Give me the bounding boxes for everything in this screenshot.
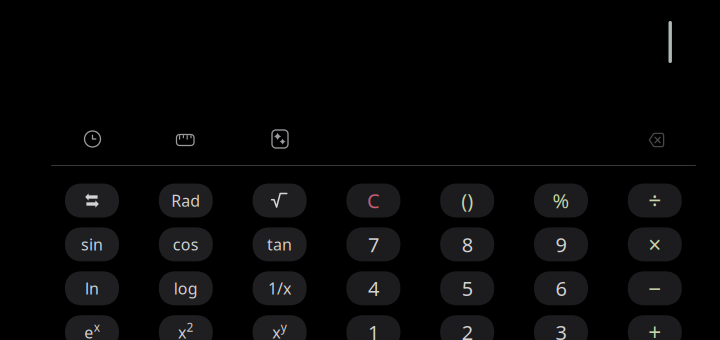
staticText: () — [461, 187, 473, 214]
button[interactable]: Percent — [534, 183, 588, 217]
staticText: − — [648, 273, 661, 303]
staticText: e — [84, 322, 93, 340]
button[interactable]: 6 — [534, 271, 588, 305]
button[interactable]: Clear — [346, 183, 400, 217]
staticText: 6 — [555, 275, 566, 302]
staticText: y — [281, 319, 287, 335]
button[interactable]: Tangent — [253, 227, 307, 261]
staticText: x — [178, 322, 186, 340]
staticText: ÷ — [648, 185, 661, 215]
button[interactable]: Delete — [647, 131, 665, 148]
button[interactable]: Log — [159, 271, 213, 305]
button[interactable]: Swap keypad — [65, 183, 119, 217]
button[interactable]: Reciprocal — [253, 271, 307, 305]
button[interactable]: Add — [628, 315, 682, 340]
staticText: + — [648, 317, 661, 340]
button[interactable]: Natural log — [65, 271, 119, 305]
staticText: x — [94, 319, 100, 335]
staticText: 2 — [187, 319, 194, 335]
staticText: 4 — [368, 275, 379, 302]
staticText: 7 — [368, 231, 379, 258]
button[interactable]: Multiply — [628, 227, 682, 261]
button[interactable]: Unit Conversion — [175, 133, 195, 146]
staticText: 9 — [555, 231, 566, 258]
staticText: C — [367, 187, 380, 214]
button[interactable]: 4 — [346, 271, 400, 305]
staticText: 5 — [462, 275, 473, 302]
button[interactable]: History — [83, 130, 101, 148]
button[interactable]: Math Notes — [271, 129, 289, 149]
button[interactable]: 7 — [346, 227, 400, 261]
staticText: cos — [173, 234, 199, 255]
staticText: 1 — [368, 319, 379, 340]
staticText: x — [272, 322, 280, 340]
staticText: sin — [81, 234, 103, 255]
button[interactable]: Square root — [253, 183, 307, 217]
button[interactable]: 2 — [440, 315, 494, 340]
staticText: log — [174, 278, 198, 299]
staticText: % — [552, 187, 569, 214]
button[interactable]: 3 — [534, 315, 588, 340]
button[interactable]: x to the y — [253, 315, 307, 340]
button[interactable]: x squared — [159, 315, 213, 340]
button[interactable]: Cosine — [159, 227, 213, 261]
staticText: 8 — [462, 231, 473, 258]
button[interactable]: 9 — [534, 227, 588, 261]
button[interactable]: Sine — [65, 227, 119, 261]
staticText: ln — [85, 278, 99, 299]
staticText: tan — [267, 234, 292, 255]
button[interactable]: Divide — [628, 183, 682, 217]
button[interactable]: 8 — [440, 227, 494, 261]
button[interactable]: Subtract — [628, 271, 682, 305]
button[interactable]: 1 — [346, 315, 400, 340]
staticText: Rad — [171, 190, 200, 211]
staticText: × — [648, 229, 661, 259]
staticText: 3 — [555, 319, 566, 340]
staticText: 2 — [462, 319, 473, 340]
button[interactable]: e to the x — [65, 315, 119, 340]
staticText: 1/x — [268, 278, 291, 299]
button[interactable]: Radians — [159, 183, 213, 217]
button[interactable]: 5 — [440, 271, 494, 305]
button[interactable]: Parentheses — [440, 183, 494, 217]
